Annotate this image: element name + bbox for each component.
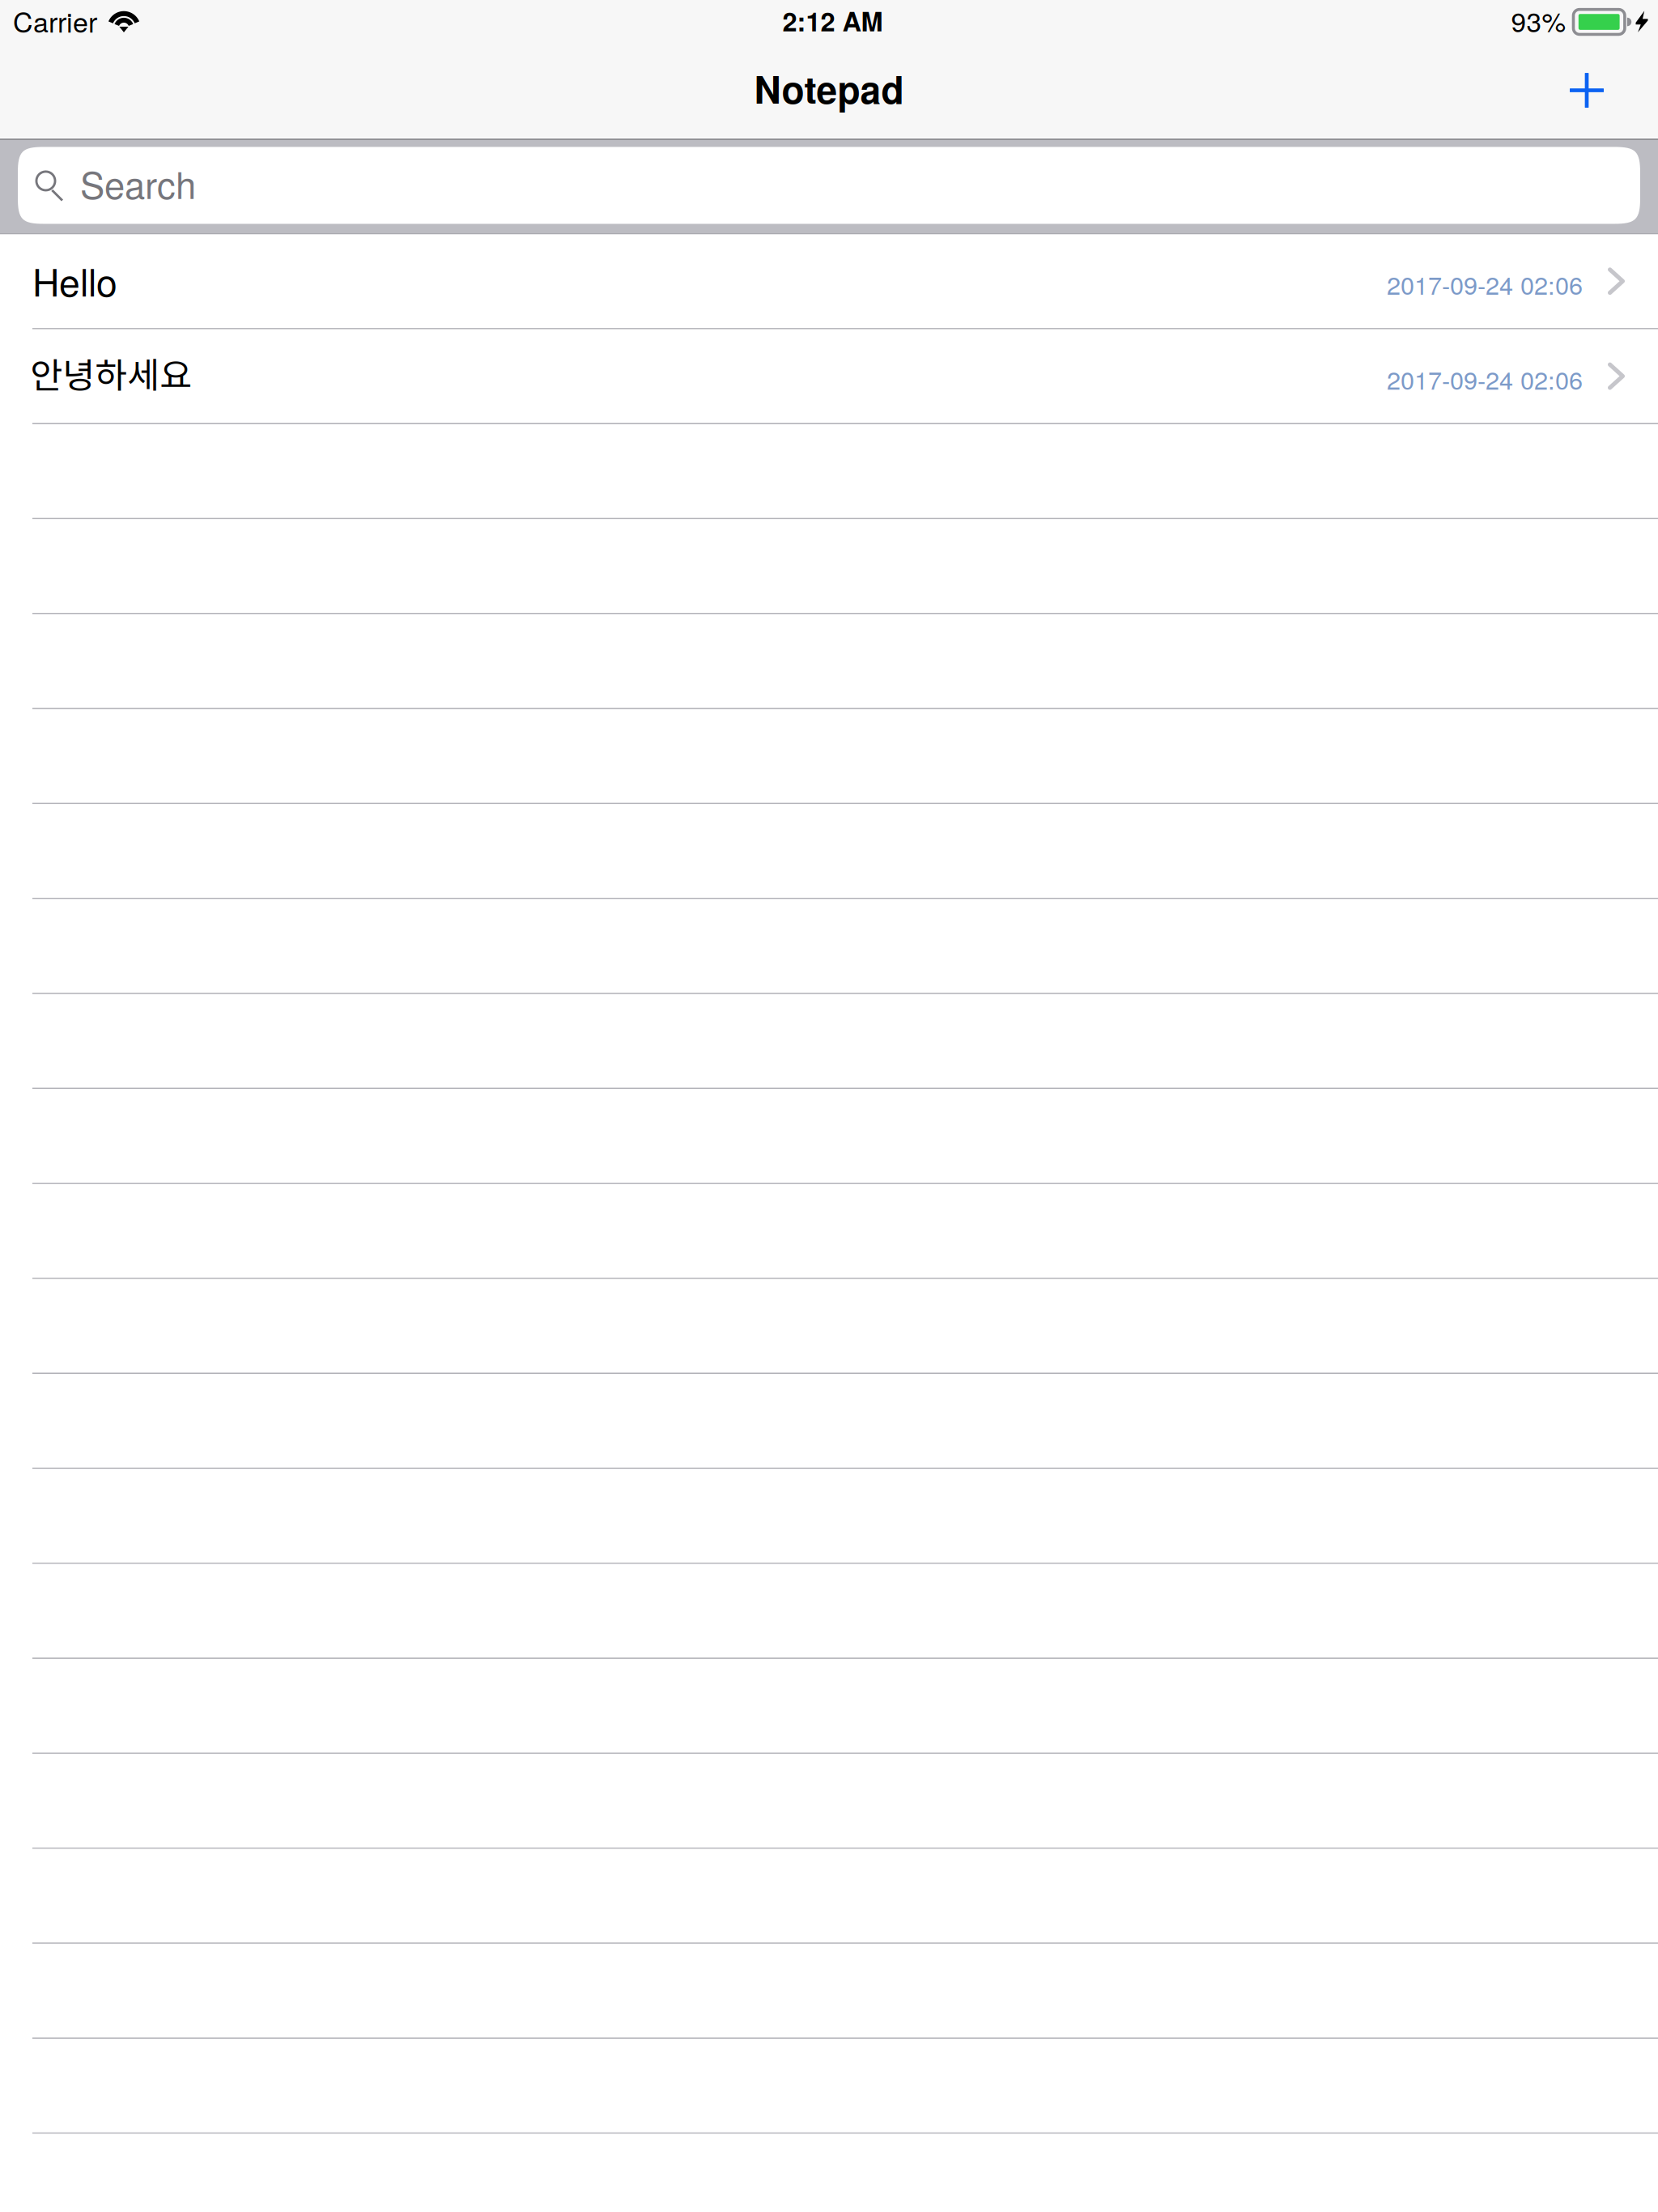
staticText: Notepad — [754, 62, 904, 115]
button[interactable]: Hello — [0, 234, 1658, 329]
staticText: 2017-09-24 02:06 — [1387, 266, 1583, 302]
button[interactable]: New note — [1548, 51, 1626, 129]
staticText: Hello — [32, 254, 117, 307]
staticText: 안녕하세요 — [30, 348, 192, 398]
staticText: 2:12 AM — [782, 2, 883, 40]
staticText: 2017-09-24 02:06 — [1387, 361, 1583, 397]
staticText: 93% — [1511, 1, 1566, 40]
staticText: Search — [80, 157, 196, 209]
button[interactable]: 안녕하세요 — [0, 329, 1658, 424]
button[interactable]: Search — [18, 147, 1640, 224]
staticText: Carrier — [13, 1, 97, 40]
